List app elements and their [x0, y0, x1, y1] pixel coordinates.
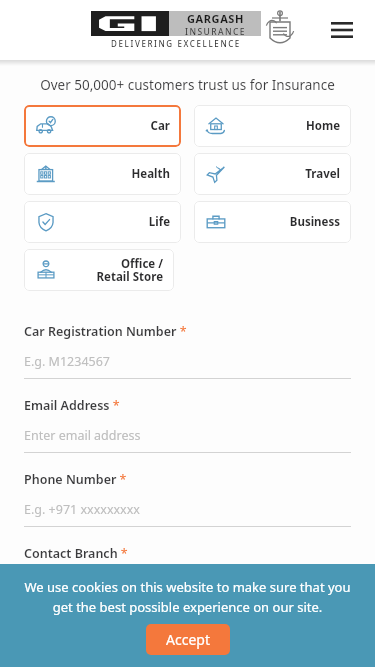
- staticText: DELIVERING EXCELLENCE: [91, 38, 261, 49]
- button[interactable]: Email Address *: [24, 397, 351, 453]
- staticText: Car: [150, 118, 170, 134]
- staticText: Life: [148, 214, 170, 230]
- staticText: We use cookies on this website to make s…: [14, 578, 361, 616]
- staticText: Car Registration Number *: [24, 323, 187, 340]
- staticText: Enter email address: [24, 427, 141, 444]
- button[interactable]: Life: [24, 201, 181, 243]
- staticText: INSURANCE: [185, 26, 246, 36]
- staticText: Travel: [305, 166, 340, 182]
- staticText: Contact Branch *: [24, 545, 128, 562]
- button[interactable]: Open menu: [325, 13, 359, 47]
- staticText: GARGASH: [187, 11, 245, 26]
- staticText: Office / Retail Store: [96, 256, 163, 285]
- staticText: Health: [131, 166, 170, 182]
- staticText: E.g. +971 xxxxxxxxx: [24, 501, 140, 518]
- staticText: Phone Number *: [24, 471, 127, 488]
- staticText: Over 50,000+ customers trust us for Insu…: [0, 76, 375, 94]
- button[interactable]: Phone Number *: [24, 471, 351, 527]
- button[interactable]: Expand branch list: [323, 578, 351, 606]
- button[interactable]: Home: [194, 105, 351, 147]
- button[interactable]: Travel: [194, 153, 351, 195]
- button[interactable]: Car Registration Number *: [24, 323, 351, 379]
- button[interactable]: Office / Retail Store: [24, 249, 174, 291]
- staticText: Business: [289, 214, 340, 230]
- staticText: E.g. M1234567: [24, 353, 110, 370]
- button[interactable]: Car: [24, 105, 181, 147]
- button[interactable]: Accept: [146, 624, 230, 655]
- button[interactable]: Expand branch list: [24, 572, 351, 612]
- staticText: Home: [305, 118, 340, 134]
- button[interactable]: Health: [24, 153, 181, 195]
- staticText: Email Address *: [24, 397, 120, 414]
- staticText: Accept: [166, 630, 210, 649]
- button[interactable]: Business: [194, 201, 351, 243]
